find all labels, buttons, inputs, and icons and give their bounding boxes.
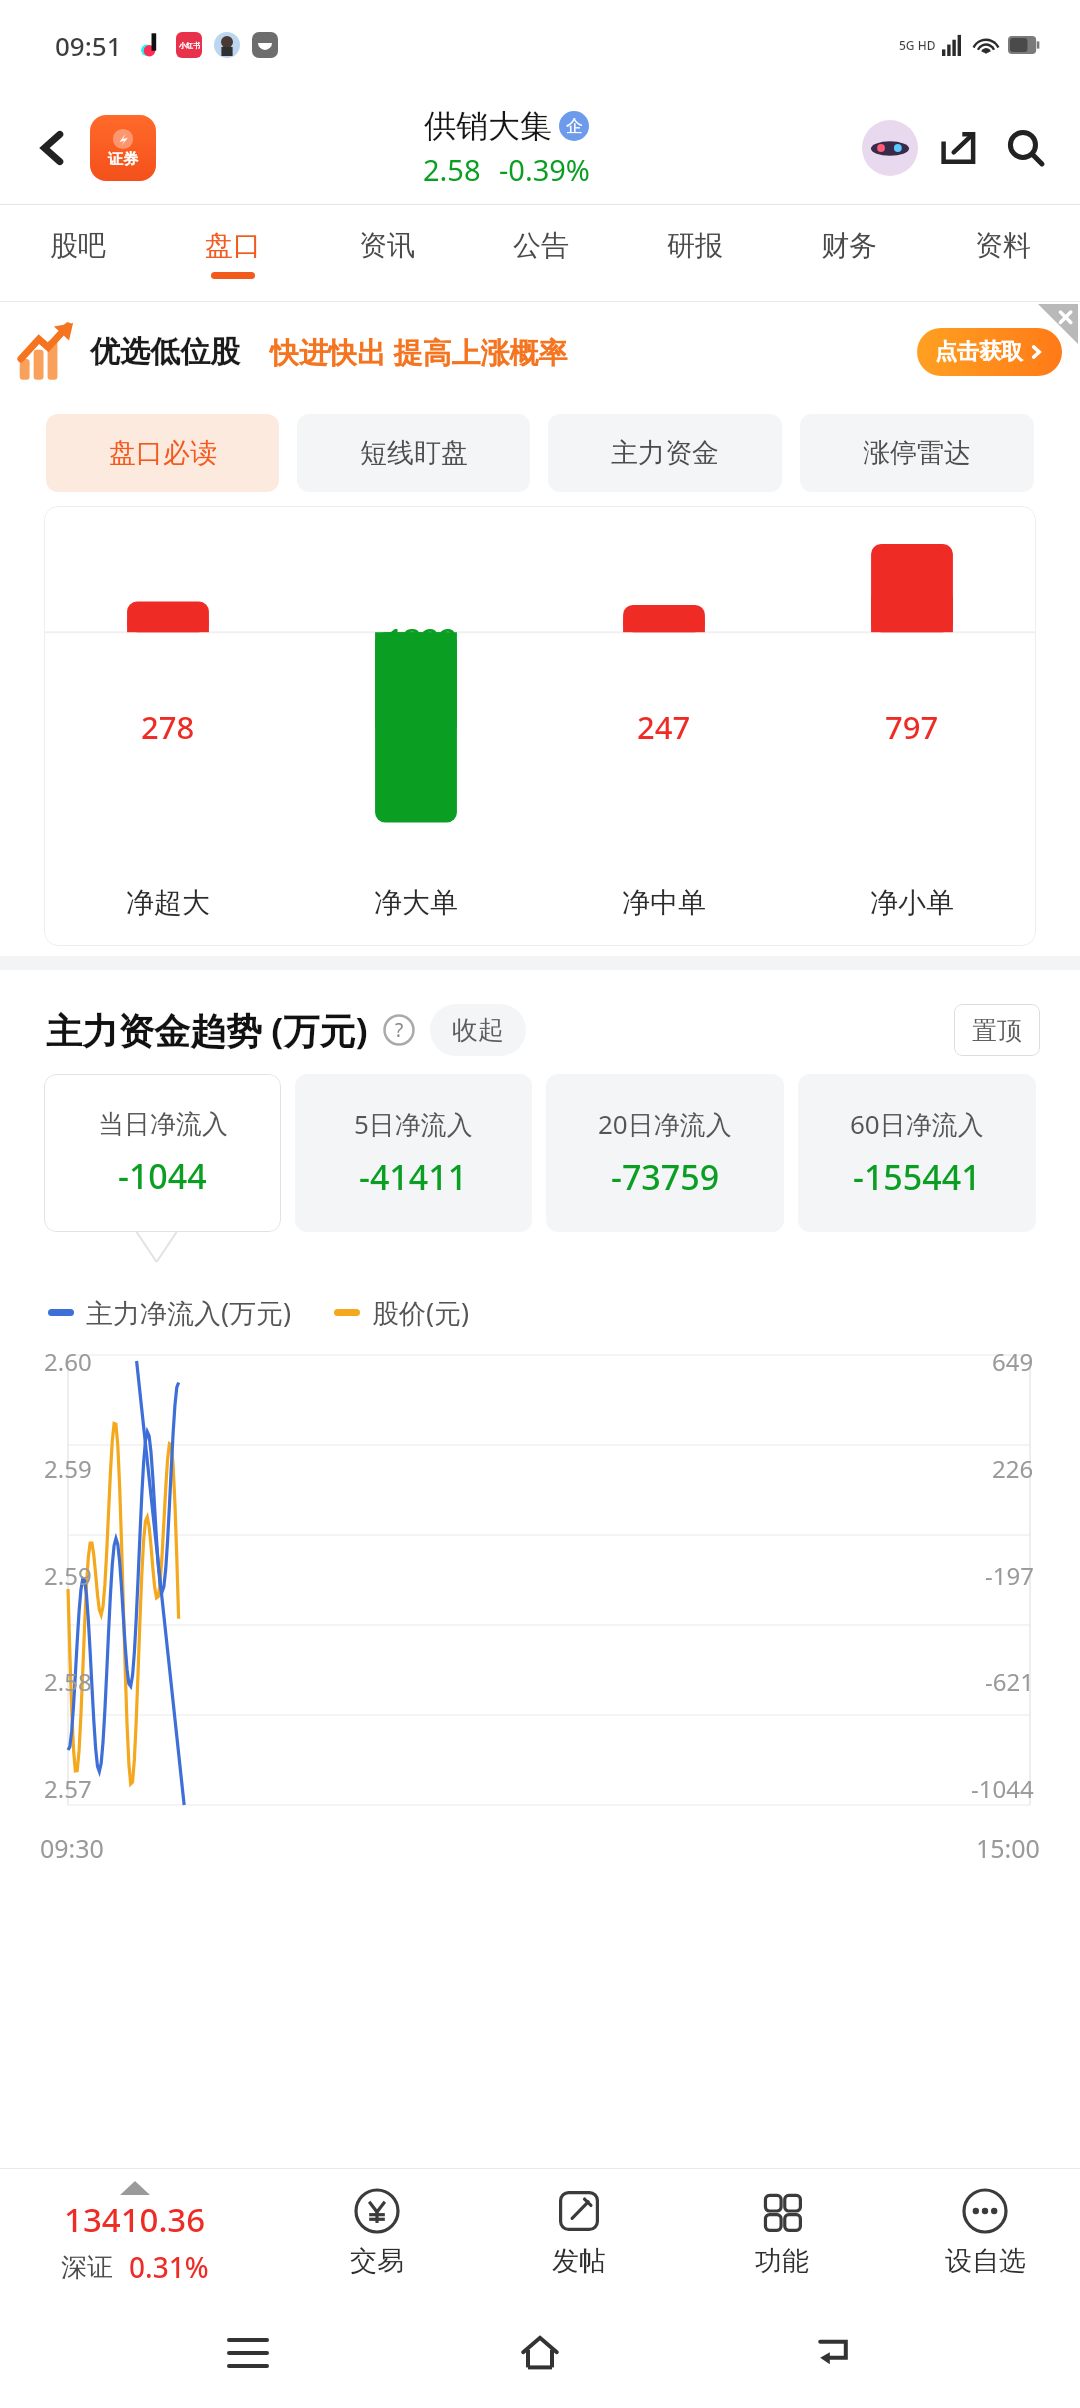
- staticText: 深证: [61, 2251, 113, 2284]
- staticText: -621: [985, 1665, 1034, 1698]
- staticText: 0.31%: [129, 2248, 209, 2286]
- staticText: 主力资金趋势 (万元): [46, 1006, 368, 1055]
- button[interactable]: Recent apps: [203, 2308, 293, 2398]
- staticText: 15:00: [976, 1831, 1040, 1865]
- button[interactable]: 研报: [618, 205, 772, 302]
- staticText: 涨停雷达: [863, 436, 971, 470]
- button[interactable]: 优选低位股: [18, 302, 1062, 402]
- button[interactable]: 主力资金: [548, 414, 782, 492]
- staticText: 5日净流入: [354, 1106, 473, 1142]
- button[interactable]: 交易: [302, 2188, 452, 2278]
- staticText: 2.58: [423, 150, 481, 189]
- button[interactable]: Back: [788, 2308, 878, 2398]
- staticText: 置顶: [972, 1015, 1022, 1046]
- staticText: 2.59: [44, 1452, 92, 1485]
- staticText: -0.39%: [499, 150, 590, 189]
- button[interactable]: Share: [926, 116, 990, 180]
- staticText: 设自选: [945, 2244, 1026, 2278]
- staticText: 247: [637, 706, 691, 748]
- staticText: 净超大: [126, 885, 210, 920]
- staticText: 主力资金: [611, 436, 719, 470]
- button[interactable]: 13410.36: [20, 2181, 250, 2286]
- button[interactable]: 收起: [452, 1004, 504, 1056]
- button[interactable]: 资讯: [310, 205, 464, 302]
- staticText: 净大单: [374, 885, 458, 920]
- button[interactable]: 设自选: [910, 2188, 1060, 2278]
- button[interactable]: Close ad: [1036, 302, 1080, 346]
- button[interactable]: 股吧: [0, 205, 155, 302]
- staticText: 资讯: [359, 228, 415, 263]
- staticText: -1044: [971, 1772, 1034, 1805]
- staticText: 资料: [975, 228, 1031, 263]
- button[interactable]: 发帖: [504, 2188, 654, 2278]
- staticText: 功能: [755, 2244, 809, 2278]
- staticText: 226: [992, 1452, 1034, 1485]
- button[interactable]: 20日净流入: [546, 1074, 784, 1232]
- staticText: 09:51: [55, 28, 122, 63]
- staticText: 财务: [821, 228, 877, 263]
- staticText: 2.60: [44, 1345, 92, 1378]
- staticText: 供销大集: [424, 106, 552, 146]
- staticText: 证券: [108, 150, 138, 169]
- staticText: 净中单: [622, 885, 706, 920]
- staticText: 当日净流入: [98, 1108, 228, 1141]
- staticText: 60日净流入: [850, 1106, 984, 1142]
- staticText: 研报: [667, 228, 723, 263]
- staticText: 公告: [513, 228, 569, 263]
- staticText: 5G HD: [899, 37, 936, 53]
- staticText: 2.59: [44, 1559, 92, 1592]
- button[interactable]: 财务: [772, 205, 926, 302]
- button[interactable]: 公告: [464, 205, 618, 302]
- button[interactable]: -1322: [44, 506, 1036, 946]
- button[interactable]: 短线盯盘: [297, 414, 530, 492]
- staticText: 优选低位股: [90, 333, 240, 371]
- button[interactable]: Home: [495, 2308, 585, 2398]
- staticText: 13410.36: [64, 2197, 206, 2242]
- button[interactable]: 5日净流入: [295, 1074, 532, 1232]
- button[interactable]: 涨停雷达: [800, 414, 1034, 492]
- staticText: 股价(元): [372, 1294, 470, 1331]
- staticText: 278: [141, 706, 195, 748]
- staticText: 797: [885, 706, 939, 748]
- staticText: -41411: [359, 1154, 468, 1200]
- staticText: 企: [566, 116, 583, 137]
- staticText: -1044: [118, 1153, 207, 1199]
- button[interactable]: Search: [994, 116, 1058, 180]
- staticText: 收起: [452, 1014, 504, 1047]
- button[interactable]: 点击获取: [935, 328, 1044, 376]
- staticText: 盘口: [205, 228, 261, 263]
- staticText: -1322: [376, 618, 457, 660]
- button[interactable]: 60日净流入: [798, 1074, 1036, 1232]
- button[interactable]: Back: [22, 117, 84, 179]
- staticText: -155441: [853, 1154, 981, 1200]
- staticText: 649: [992, 1345, 1034, 1378]
- staticText: -73759: [611, 1154, 720, 1200]
- staticText: 主力净流入(万元): [86, 1294, 292, 1331]
- staticText: 发帖: [552, 2244, 606, 2278]
- button[interactable]: 置顶: [972, 1004, 1022, 1056]
- button[interactable]: 当日净流入: [44, 1074, 281, 1232]
- staticText: 09:30: [40, 1831, 104, 1865]
- button[interactable]: Help: [382, 1013, 416, 1047]
- staticText: 股吧: [50, 228, 106, 263]
- button[interactable]: 功能: [707, 2188, 857, 2278]
- staticText: ?: [395, 1017, 404, 1043]
- staticText: 交易: [350, 2244, 404, 2278]
- staticText: 小红书: [179, 41, 200, 50]
- staticText: 短线盯盘: [360, 436, 468, 470]
- button[interactable]: Avatar: [858, 116, 922, 180]
- button[interactable]: 资料: [926, 205, 1080, 302]
- staticText: 快进快出 提高上涨概率: [270, 332, 568, 372]
- staticText: 净小单: [870, 885, 954, 920]
- staticText: 盘口必读: [109, 436, 217, 470]
- staticText: 20日净流入: [598, 1106, 732, 1142]
- staticText: 点击获取: [935, 338, 1023, 366]
- staticText: 2.58: [44, 1665, 92, 1698]
- staticText: -197: [985, 1559, 1034, 1592]
- button[interactable]: 盘口必读: [46, 414, 279, 492]
- button[interactable]: 盘口: [155, 205, 310, 302]
- staticText: 2.57: [44, 1772, 92, 1805]
- button[interactable]: App: [90, 115, 156, 181]
